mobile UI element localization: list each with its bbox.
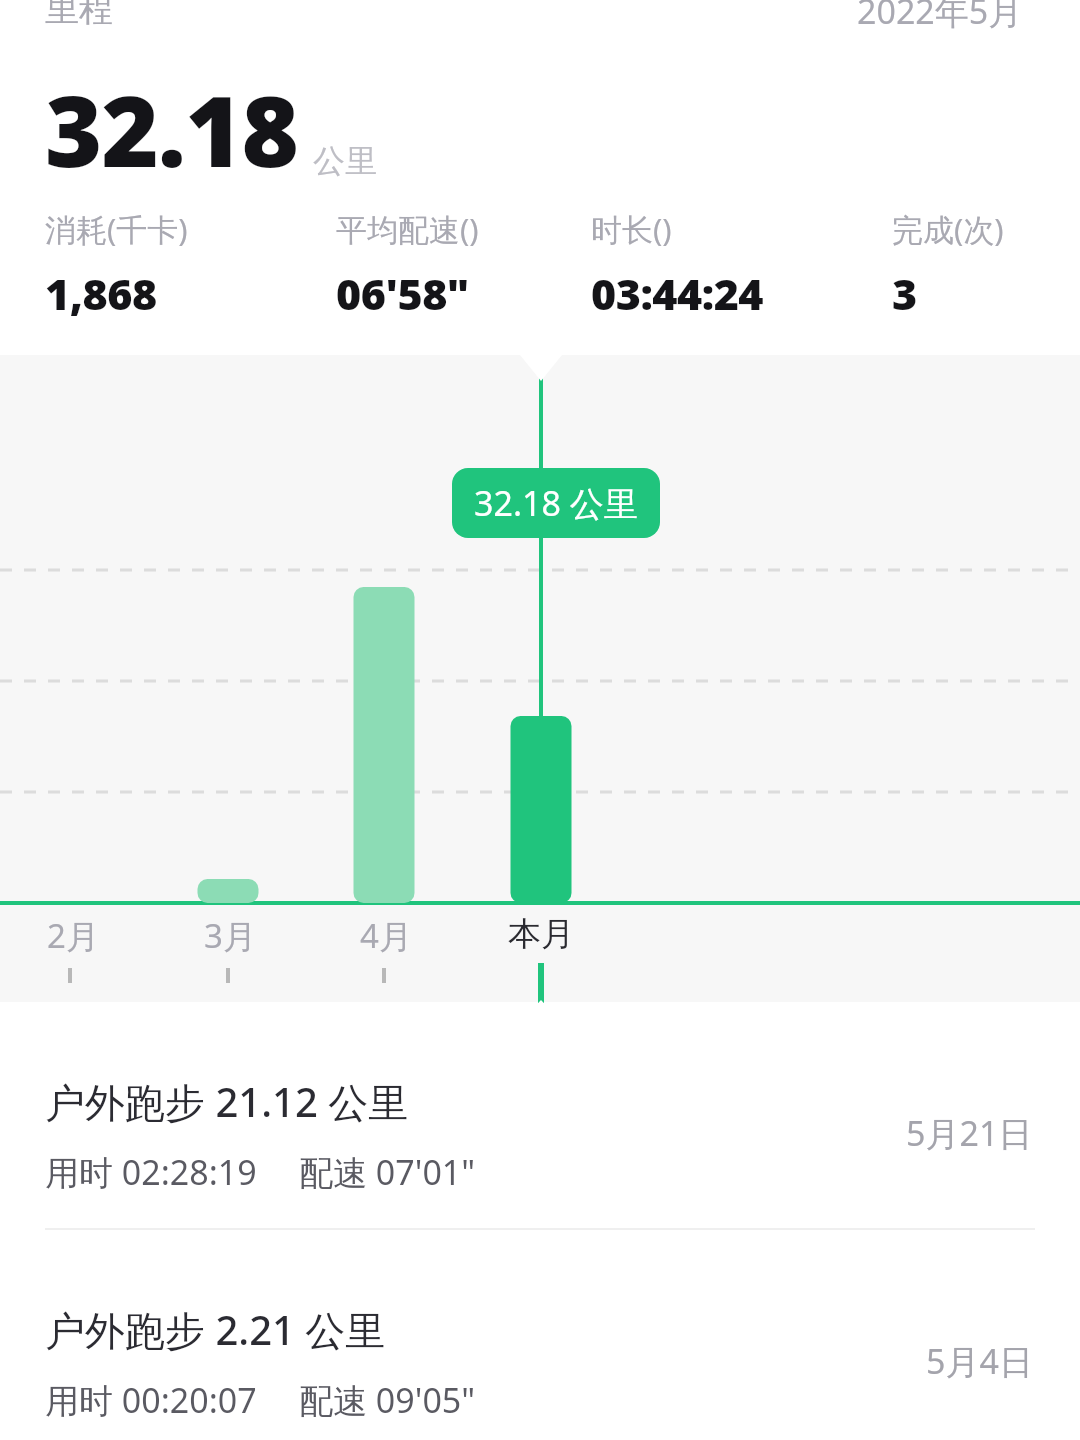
staticText: 32.18 公里 [474, 480, 638, 526]
button[interactable]: 户外跑步 21.12 公里 [0, 1002, 1080, 1230]
staticText: 2022年5月 [857, 0, 1023, 34]
staticText: 平均配速() [336, 208, 479, 250]
staticText: 4月 [360, 913, 412, 958]
staticText: 5月21日 [906, 1110, 1033, 1156]
staticText: 户外跑步 2.21 公里 [45, 1302, 386, 1357]
staticText: 3月 [204, 913, 256, 958]
staticText: 用时 02:28:19 [45, 1149, 257, 1195]
button[interactable]: 户外跑步 2.21 公里 [0, 1230, 1080, 1440]
staticText: 06'58" [336, 264, 469, 323]
staticText: 公里 [313, 141, 377, 181]
button[interactable]: 32.18 公里 [452, 468, 660, 538]
staticText: 3 [892, 264, 917, 323]
staticText: 配速 07'01" [299, 1149, 476, 1195]
staticText: 03:44:24 [591, 264, 764, 323]
staticText: 消耗(千卡) [45, 208, 188, 250]
staticText: 完成(次) [892, 208, 1004, 250]
staticText: 配速 09'05" [299, 1377, 476, 1423]
staticText: 用时 00:20:07 [45, 1377, 257, 1423]
staticText: 32.18 [45, 62, 299, 195]
other: 月度里程柱状图 [0, 355, 1080, 1002]
staticText: 2月 [47, 913, 99, 958]
staticText: 1,868 [45, 264, 157, 323]
staticText: 5月4日 [926, 1338, 1033, 1384]
staticText: 时长() [591, 208, 672, 250]
staticText: 户外跑步 21.12 公里 [45, 1074, 409, 1129]
staticText: 本月 [508, 913, 574, 955]
staticText: 里程 [45, 0, 113, 31]
